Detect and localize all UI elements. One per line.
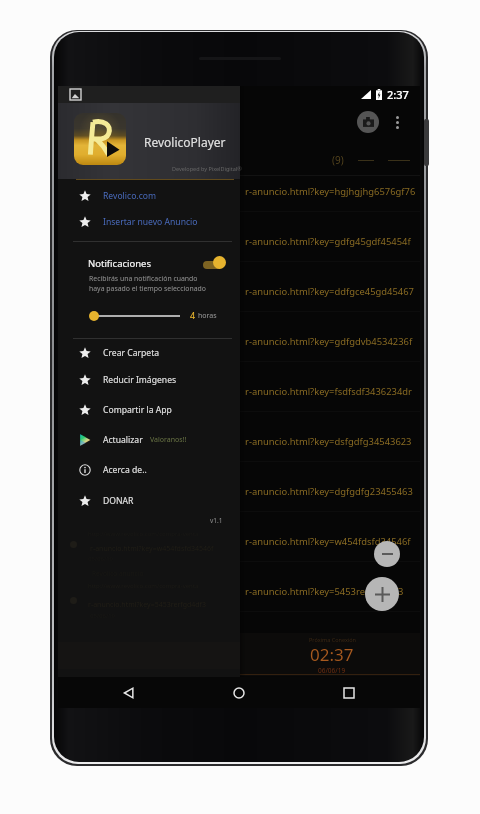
staticText: Insertar nuevo Anuncio [103, 216, 198, 228]
button[interactable]: Home [184, 677, 294, 708]
staticText: 02:37 [310, 643, 354, 666]
staticText: 4 [190, 309, 196, 321]
staticText: Valoranos!! [150, 435, 187, 445]
button[interactable]: DONAR [58, 488, 240, 514]
button[interactable] [89, 311, 180, 321]
staticText: Crear Carpeta [103, 347, 160, 359]
button[interactable]: Camera [357, 111, 379, 133]
button[interactable]: Increase [365, 577, 399, 611]
staticText: Compartir la App [103, 404, 172, 416]
staticText: r-anuncio.html?key=gdfgdvb4534236f [245, 335, 413, 348]
button[interactable]: Actualizar [58, 427, 240, 453]
staticText: r-anuncio.html?key=gdfg45gdf45454f [245, 235, 411, 248]
staticText: Acerca de.. [103, 464, 147, 476]
staticText: 06/06/19 [318, 666, 346, 675]
staticText: Próxima Conexión [309, 636, 356, 643]
staticText: Recibirás una notificación cuando [89, 274, 198, 283]
button[interactable]: More options [389, 112, 405, 132]
staticText: Revolico.com [103, 190, 157, 202]
staticText: 2:37 [387, 87, 409, 102]
staticText: r-anuncio.html?key=hgjhgjhg6576gf76 [245, 185, 416, 198]
staticText: v1.1 [210, 516, 223, 525]
staticText: horas [198, 311, 217, 321]
button[interactable]: Crear Carpeta [58, 340, 240, 366]
staticText: RevolicoPlayer [144, 134, 226, 150]
staticText: (9) [332, 153, 344, 167]
button[interactable]: Back [74, 677, 184, 708]
staticText: r-anuncio.html?key=5453rerfgd4df3 [88, 600, 207, 610]
staticText: r-anuncio.html?key=dgfgdfg23455463 [245, 485, 413, 498]
staticText: haya pasado el tiempo seleccionado [89, 284, 206, 293]
staticText: Reducir Imágenes [103, 374, 177, 386]
button[interactable]: Revolico.com [58, 183, 240, 209]
staticText: Developed by PixelDigital® [172, 165, 242, 172]
staticText: r-anuncio.html?key=5453rerfgd4df3 [245, 585, 404, 598]
button[interactable]: Reducir Imágenes [58, 367, 240, 393]
staticText: Actualizar [103, 434, 143, 446]
button[interactable]: Compartir la App [58, 397, 240, 423]
staticText: r-anuncio.html?key=fsdfsdf3436234dr [245, 385, 412, 398]
button[interactable]: Decrease [374, 541, 400, 567]
button[interactable] [200, 255, 232, 269]
button[interactable]: Recents [294, 677, 404, 708]
button[interactable]: Acerca de.. [58, 457, 240, 483]
staticText: Notificaciones [88, 257, 151, 270]
staticText: DONAR [103, 495, 134, 507]
staticText: r-anuncio.html?key=ddfgce45gd45467 [245, 285, 414, 298]
staticText: r-anuncio.html?key=w454fdsfd34546f [245, 535, 411, 548]
button[interactable]: Insertar nuevo Anuncio [58, 209, 240, 235]
staticText: r-anuncio.html?key=dsfgdfg34543623 [245, 435, 412, 448]
